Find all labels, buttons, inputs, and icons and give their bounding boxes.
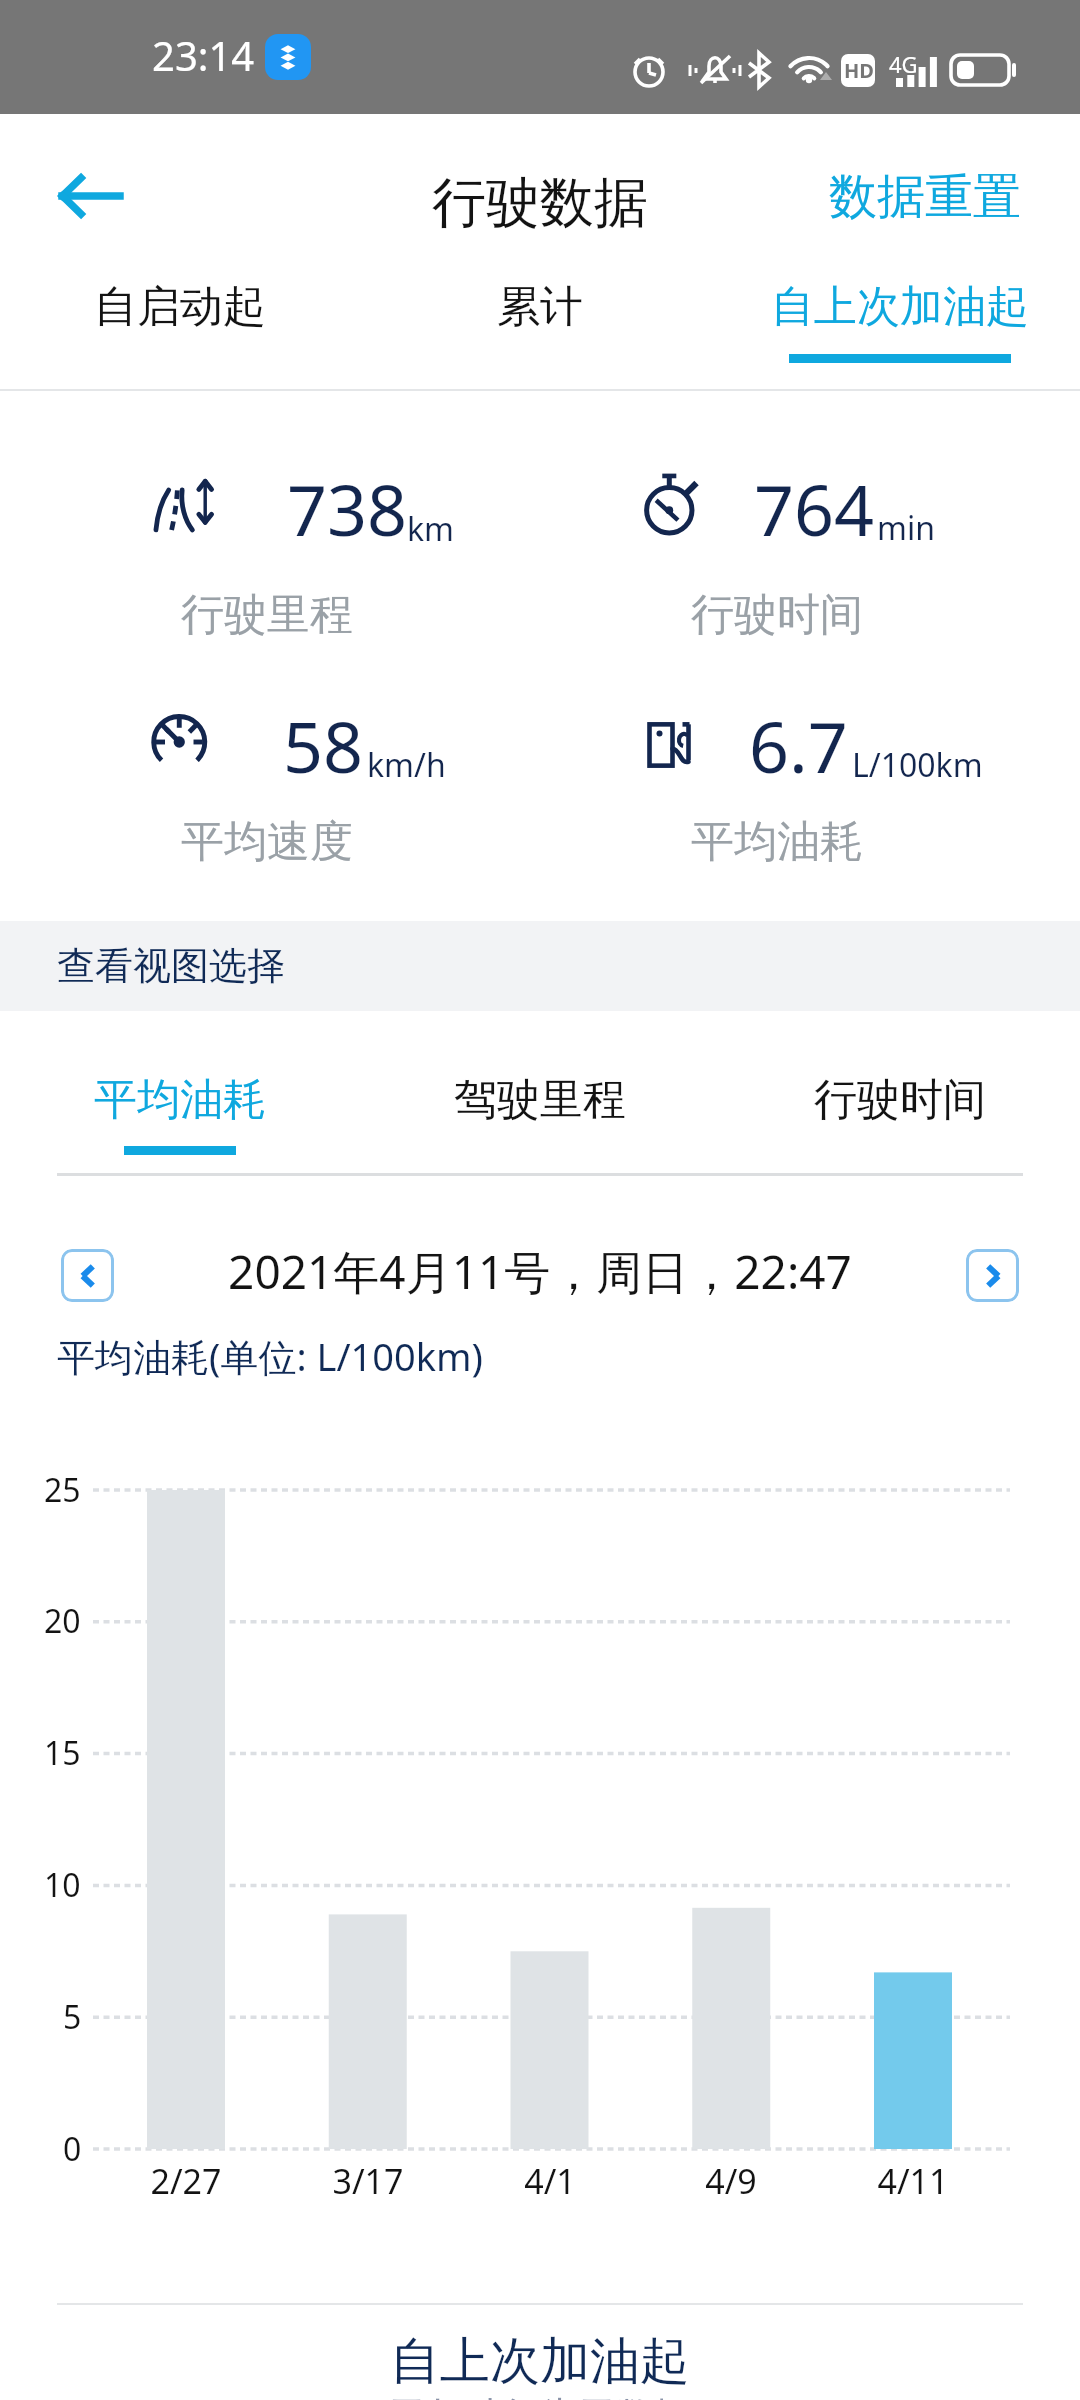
staticText: 行驶时间 [691,588,863,642]
staticText: 4G [889,49,918,79]
button[interactable]: 自启动起 [0,260,360,389]
staticText: HD [844,57,874,84]
staticText: 4/11 [843,2158,983,2204]
staticText: 6.7 [749,698,848,793]
staticText: 行驶数据 [432,169,648,237]
staticText: 自启动起 [94,280,266,334]
staticText: 4/1 [480,2158,620,2204]
staticText: 累计 [497,280,583,334]
staticText: 764 [754,461,875,556]
staticText: 20 [44,1599,81,1643]
staticText: 10 [44,1863,81,1907]
staticText: 3/17 [298,2158,438,2204]
button[interactable]: 自上次加油起 [720,260,1080,389]
staticText: 平均油耗(单位: L/100km) [57,1330,483,1382]
button[interactable]: 驾驶里程 [360,1011,720,1176]
staticText: 数据重置 [829,167,1021,227]
staticText: 5 [63,1995,82,2039]
button[interactable]: Next period [966,1249,1019,1302]
staticText: min [877,506,935,550]
staticText: 平均油耗 [94,1073,266,1127]
button[interactable]: 数据重置 [799,141,1080,233]
staticText: 4/9 [661,2158,801,2204]
staticText: 查看视图选择 [57,942,285,990]
staticText: 自上次加油起 [0,2330,1080,2393]
staticText: 0 [63,2127,82,2171]
staticText: 738 [287,461,408,556]
staticText: （无驾驶行为无数据） [0,2392,1080,2400]
staticText: 平均油耗 [691,815,863,869]
staticText: 25 [44,1468,81,1512]
staticText: L/100km [852,743,983,787]
staticText: 23:14 [152,28,255,82]
staticText: 2/27 [116,2158,256,2204]
staticText: 15 [44,1731,81,1775]
staticText: 58 [283,698,364,793]
staticText: 2021年4月11号，周日，22:47 [228,1240,852,1295]
staticText: 驾驶里程 [454,1073,626,1127]
staticText: km/h [367,743,446,787]
staticText: km [407,507,455,551]
staticText: 行驶里程 [181,588,353,642]
staticText: 平均速度 [181,815,353,869]
button[interactable]: 平均油耗 [0,1011,360,1176]
staticText: 自上次加油起 [771,280,1029,334]
button[interactable]: Previous period [61,1249,114,1302]
button[interactable]: Back [42,148,138,244]
staticText: 行驶时间 [814,1073,986,1127]
button[interactable]: 行驶时间 [720,1011,1080,1176]
button[interactable]: 累计 [360,260,720,389]
